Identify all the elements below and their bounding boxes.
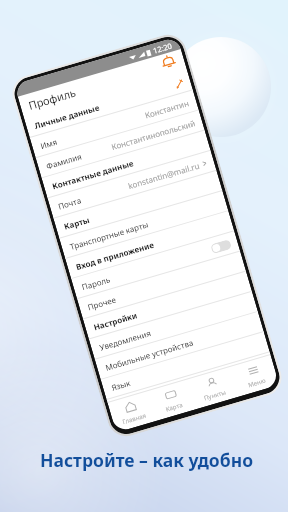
staticText: Пароль <box>80 273 111 292</box>
staticText: Личные данные <box>33 101 101 131</box>
button[interactable]: Контактные данные <box>42 130 211 198</box>
button[interactable]: Карты <box>53 171 222 239</box>
staticText: Вход в приложение <box>74 239 155 272</box>
staticText: Прочее <box>86 294 117 312</box>
staticText: Карты <box>63 214 92 232</box>
staticText: Мобильные устройства <box>104 337 194 373</box>
staticText: konstantin@mail.ru <box>127 160 201 191</box>
button[interactable]: Мобильные устройства <box>95 312 264 380</box>
button[interactable]: Прочее <box>77 251 246 319</box>
button[interactable]: Карта <box>147 378 197 421</box>
staticText: Карта <box>164 400 184 413</box>
button[interactable]: Почта <box>48 151 217 219</box>
staticText: Настройки <box>92 309 138 332</box>
staticText: Пункты <box>203 387 227 401</box>
staticText: Профиль <box>26 85 78 113</box>
staticText: Меню <box>247 376 266 388</box>
staticText: Константинопольский <box>110 117 197 152</box>
staticText: Константин <box>143 97 191 120</box>
button[interactable]: Фамилия <box>36 110 205 178</box>
button[interactable]: Личные данные <box>24 70 193 138</box>
staticText: Контактные данные <box>51 157 135 191</box>
staticText: 12:20 <box>152 40 174 55</box>
staticText: Транспортные карты <box>68 218 150 252</box>
button[interactable]: Настройки <box>83 271 252 339</box>
button[interactable]: Вход в приложение <box>65 211 234 279</box>
button[interactable]: Язык <box>101 332 270 400</box>
staticText: Фамилия <box>45 150 83 171</box>
staticText: Язык <box>110 377 132 393</box>
staticText: Почта <box>57 194 83 212</box>
button[interactable]: Главная <box>107 390 156 433</box>
button[interactable]: Пароль <box>71 231 240 299</box>
button[interactable]: Имя <box>30 90 199 158</box>
staticText: Имя <box>39 136 58 151</box>
button[interactable]: Edit <box>173 77 186 90</box>
button[interactable]: Уведомления <box>89 292 258 360</box>
button[interactable]: Пункты <box>188 366 238 409</box>
staticText: Уведомления <box>98 327 153 353</box>
button[interactable]: Меню <box>229 354 279 397</box>
button[interactable]: Notifications <box>159 52 178 71</box>
staticText: Настройте – как удобно <box>40 448 254 472</box>
button[interactable]: Транспортные карты <box>59 191 228 259</box>
staticText: Главная <box>121 411 147 425</box>
